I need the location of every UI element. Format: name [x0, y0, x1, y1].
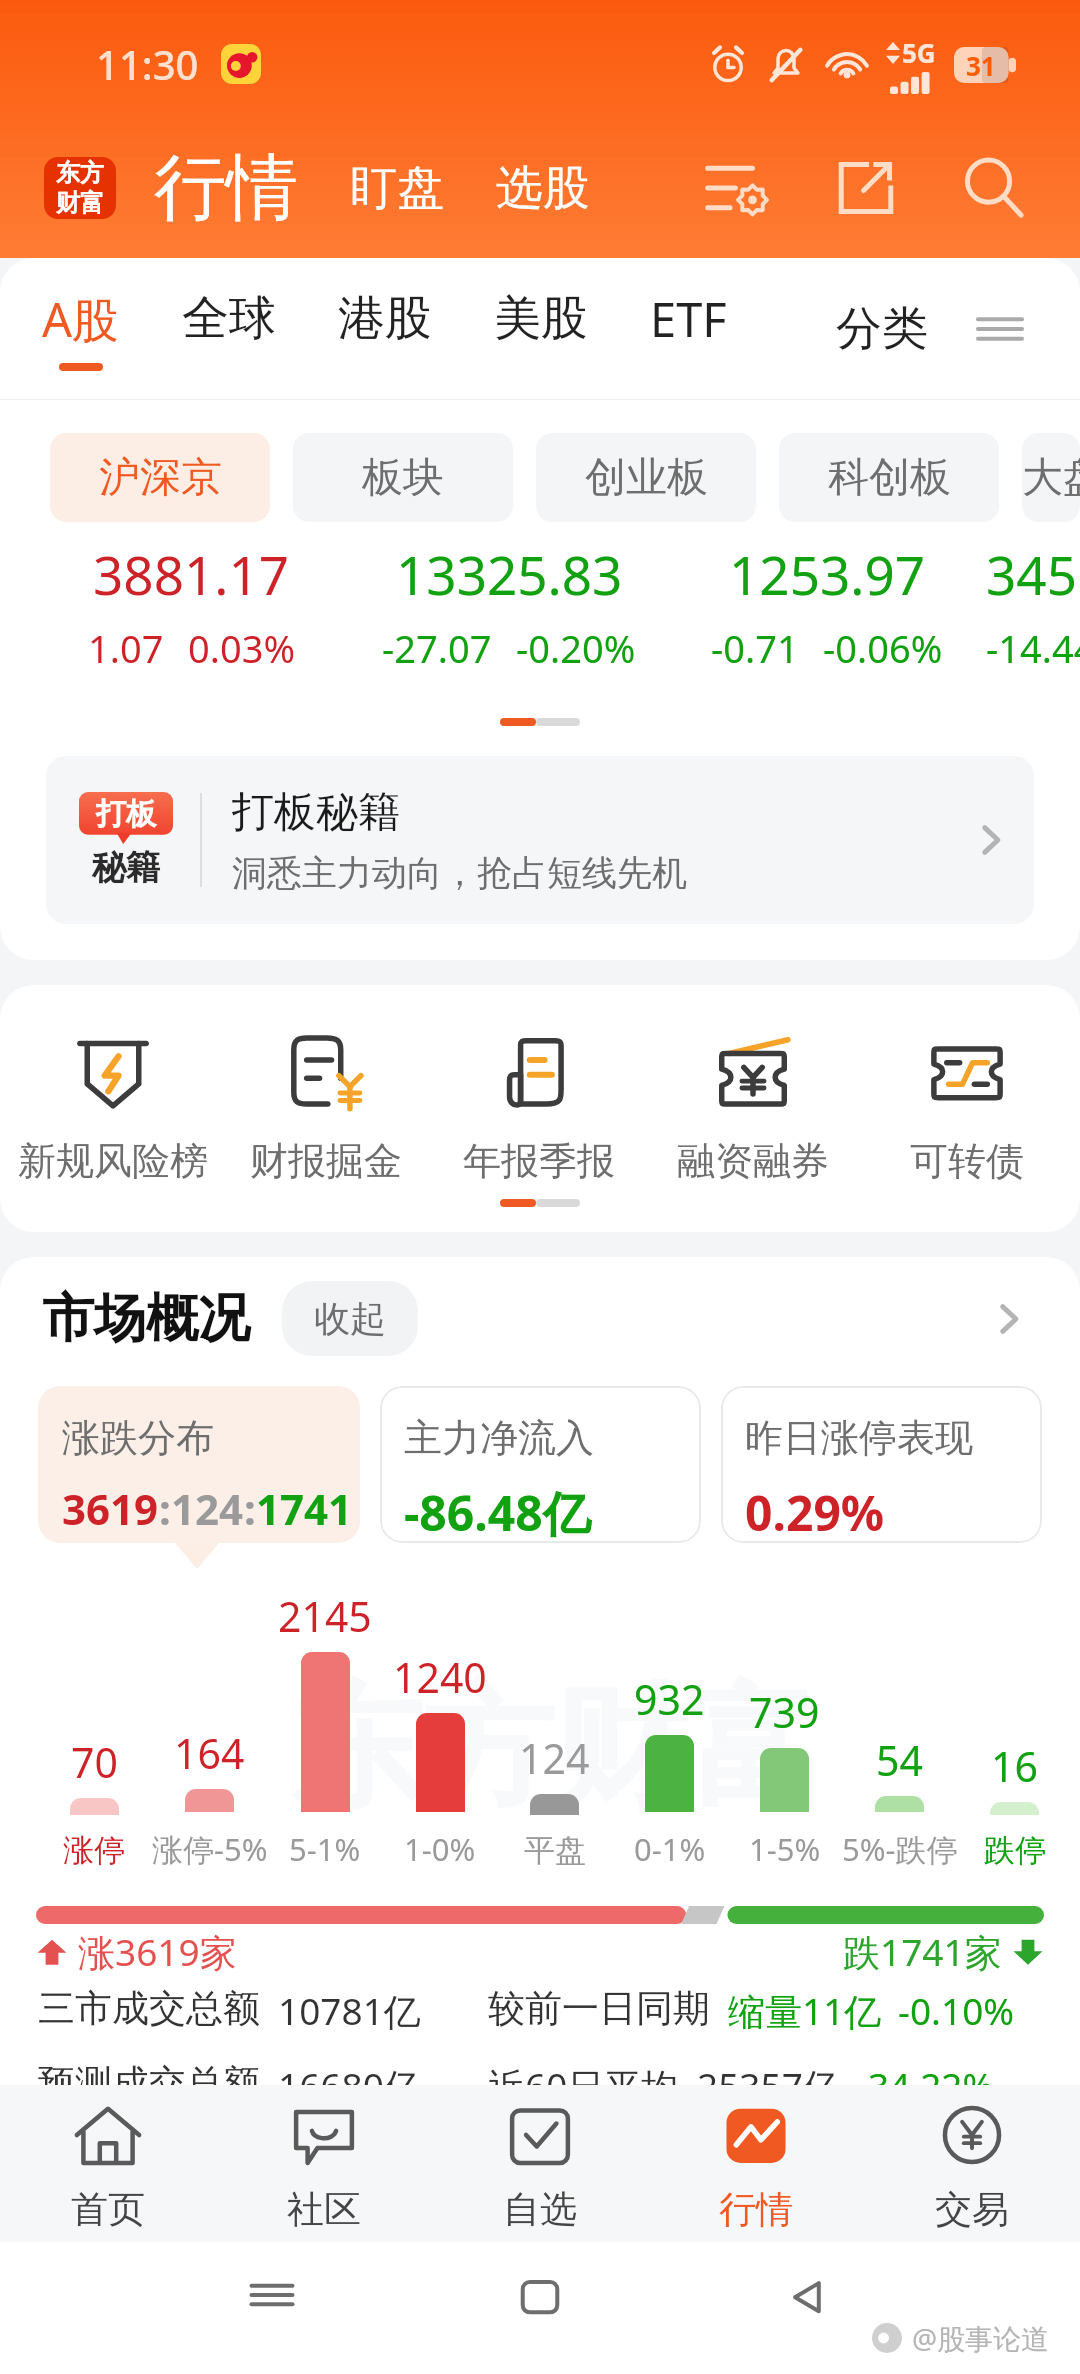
button[interactable]: 交易: [864, 2085, 1080, 2242]
staticText: 科创板: [828, 452, 951, 504]
staticText: 预测成交总额: [38, 2060, 260, 2085]
staticText: :: [159, 1480, 171, 1537]
staticText: A股: [42, 287, 120, 351]
staticText: 涨停: [63, 1831, 125, 1870]
staticText: 3619: [62, 1480, 159, 1537]
staticText: ETF: [650, 287, 727, 351]
button[interactable]: 可转债: [860, 1025, 1074, 1185]
staticText: -14.44: [986, 622, 1080, 674]
staticText: 近60日平均: [488, 2060, 679, 2085]
button[interactable]: 社区: [216, 2085, 432, 2242]
button[interactable]: 年报季报: [432, 1025, 646, 1185]
button[interactable]: 涨跌分布: [38, 1386, 360, 1543]
staticText: 大盘: [1022, 452, 1080, 504]
staticText: 0-1%: [634, 1828, 706, 1870]
staticText: 0.29%: [745, 1480, 885, 1543]
staticText: 平盘: [524, 1831, 586, 1870]
button[interactable]: 大盘: [1022, 433, 1080, 522]
staticText: -0.06%: [823, 622, 943, 674]
button[interactable]: 美股: [494, 258, 588, 399]
staticText: 社区: [287, 2186, 361, 2233]
staticText: 124: [171, 1480, 244, 1537]
staticText: 1240: [393, 1649, 487, 1705]
button[interactable]: 盯盘: [344, 145, 450, 232]
staticText: 10781亿: [278, 1985, 421, 2036]
button[interactable]: 打板: [46, 756, 1034, 924]
staticText: 11:30: [96, 37, 199, 91]
button[interactable]: Open market overview: [978, 1289, 1038, 1349]
button[interactable]: 板块: [293, 433, 513, 522]
staticText: 2145: [278, 1588, 372, 1644]
staticText: 年报季报: [463, 1137, 615, 1185]
button[interactable]: Search: [950, 144, 1038, 232]
staticText: -0.71: [711, 622, 799, 674]
staticText: 1253.97: [729, 538, 926, 610]
button[interactable]: 自选: [432, 2085, 648, 2242]
button[interactable]: 沪深京: [50, 433, 270, 522]
staticText: 739: [749, 1684, 820, 1740]
staticText: 盯盘: [350, 159, 444, 218]
staticText: 主力净流入: [404, 1414, 594, 1462]
staticText: 缩量11亿: [728, 1985, 882, 2036]
button[interactable]: 首页: [0, 2085, 216, 2242]
staticText: 融资融券: [677, 1137, 829, 1185]
staticText: 1-0%: [404, 1828, 476, 1870]
staticText: 沪深京: [99, 452, 222, 504]
staticText: 5G: [902, 35, 936, 70]
staticText: 东方财富: [290, 1666, 818, 1832]
button[interactable]: 收起: [282, 1281, 418, 1356]
button[interactable]: Back: [781, 2268, 835, 2322]
button[interactable]: 全球: [182, 258, 276, 399]
button[interactable]: Share: [822, 144, 910, 232]
staticText: 3881.17: [93, 538, 290, 610]
button[interactable]: Settings: [694, 144, 782, 232]
staticText: 收起: [314, 1296, 386, 1341]
staticText: 行情: [719, 2186, 793, 2233]
staticText: 13325.83: [396, 538, 623, 610]
button[interactable]: Home: [513, 2268, 567, 2322]
staticText: 行情: [154, 143, 298, 234]
staticText: 分类: [836, 300, 928, 358]
button[interactable]: 市场概况: [42, 1281, 1038, 1356]
staticText: -27.07: [382, 622, 492, 674]
staticText: 3456.78: [986, 538, 1080, 610]
button[interactable]: 选股: [490, 145, 596, 232]
staticText: 164: [174, 1725, 245, 1781]
staticText: 昨日涨停表现: [745, 1414, 973, 1462]
staticText: 选股: [496, 159, 590, 218]
staticText: 市场概况: [42, 1286, 250, 1352]
staticText: 打板秘籍: [232, 786, 400, 839]
button[interactable]: 分类: [836, 282, 928, 376]
staticText: 三市成交总额: [38, 1985, 260, 2032]
staticText: -0.20%: [516, 622, 636, 674]
button[interactable]: 新规风险榜: [6, 1025, 219, 1185]
staticText: 1741: [256, 1480, 353, 1537]
staticText: 财报掘金: [250, 1137, 402, 1185]
button[interactable]: 科创板: [779, 433, 999, 522]
button[interactable]: More: [972, 301, 1028, 357]
staticText: 5-1%: [289, 1828, 361, 1870]
button[interactable]: Recent apps: [245, 2268, 299, 2322]
button[interactable]: 行情: [648, 2085, 864, 2242]
button[interactable]: 昨日涨停表现: [721, 1386, 1042, 1543]
button[interactable]: 创业板: [536, 433, 756, 522]
staticText: 1-5%: [749, 1828, 821, 1870]
button[interactable]: 融资融券: [646, 1025, 860, 1185]
staticText: 5%-跌停: [842, 1828, 957, 1870]
staticText: 首页: [71, 2186, 145, 2233]
staticText: 创业板: [585, 452, 708, 504]
button[interactable]: 港股: [338, 258, 432, 399]
button[interactable]: Open 打板秘籍: [960, 810, 1020, 870]
button[interactable]: 主力净流入: [380, 1386, 701, 1543]
staticText: 跌停: [984, 1831, 1046, 1870]
button[interactable]: A股: [42, 258, 120, 399]
staticText: 东方: [56, 158, 104, 188]
staticText: @股事论道: [912, 2319, 1050, 2357]
button[interactable]: ETF: [650, 258, 727, 399]
staticText: -0.10%: [898, 1985, 1015, 2035]
staticText: 洞悉主力动向，抢占短线先机: [232, 851, 687, 895]
button[interactable]: 财报掘金: [219, 1025, 432, 1185]
staticText: -86.48亿: [404, 1480, 591, 1543]
staticText: :: [244, 1480, 256, 1537]
staticText: 涨停-5%: [152, 1828, 267, 1870]
